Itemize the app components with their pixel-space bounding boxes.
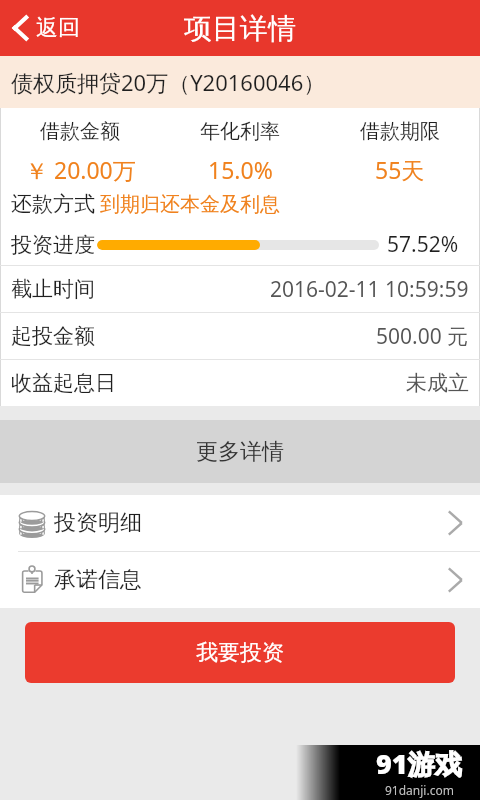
staticText: ￥ 20.00万	[25, 154, 136, 184]
staticText: 返回	[36, 14, 80, 42]
staticText: 借款期限	[360, 119, 440, 144]
staticText: 投资明细	[54, 509, 142, 537]
button[interactable]: 投资明细	[0, 495, 480, 551]
staticText: 55天	[375, 154, 425, 184]
staticText: 91游戏	[376, 745, 462, 782]
staticText: 起投金额	[11, 323, 95, 349]
staticText: 投资进度	[11, 232, 95, 258]
staticText: 500.00 元	[376, 322, 469, 351]
staticText: 还款方式	[11, 191, 95, 217]
button[interactable]: 我要投资	[25, 622, 455, 683]
staticText: 91danji.com	[385, 782, 454, 798]
staticText: 项目详情	[184, 11, 296, 46]
staticText: 未成立	[406, 370, 469, 396]
staticText: 我要投资	[196, 639, 284, 667]
button[interactable]: 承诺信息	[0, 552, 480, 608]
staticText: 借款金额	[40, 119, 120, 144]
staticText: 债权质押贷20万（Y20160046）	[11, 67, 326, 97]
staticText: 承诺信息	[54, 566, 142, 594]
staticText: 更多详情	[196, 438, 284, 466]
staticText: 年化利率	[200, 119, 280, 144]
staticText: 2016-02-11 10:59:59	[270, 275, 469, 304]
staticText: 到期归还本金及利息	[100, 192, 280, 217]
staticText: 57.52%	[387, 230, 459, 259]
button[interactable]: 返回	[0, 6, 94, 50]
staticText: 收益起息日	[11, 370, 116, 396]
staticText: 截止时间	[11, 276, 95, 302]
staticText: 15.0%	[208, 154, 273, 184]
